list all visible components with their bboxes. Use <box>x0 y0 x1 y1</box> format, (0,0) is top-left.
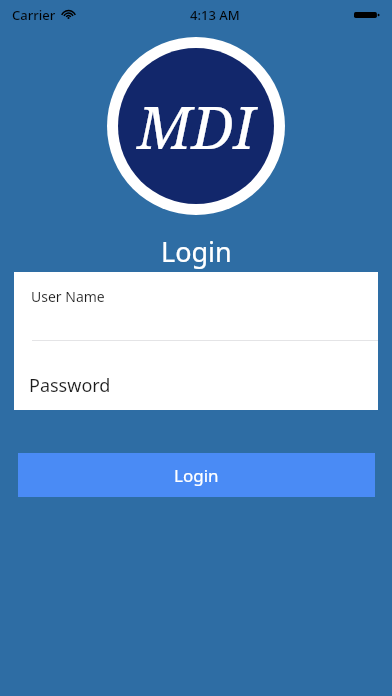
button[interactable]: Login <box>18 453 375 497</box>
staticText: Login <box>161 233 232 270</box>
staticText: User Name <box>31 287 105 306</box>
staticText: MDI <box>137 87 255 166</box>
staticText: 4:13 AM <box>190 6 240 24</box>
staticText: Carrier <box>12 6 56 24</box>
button[interactable]: User Name <box>14 272 378 340</box>
staticText: Password <box>29 373 111 398</box>
staticText: Login <box>174 464 219 487</box>
button[interactable]: Password <box>14 341 378 410</box>
